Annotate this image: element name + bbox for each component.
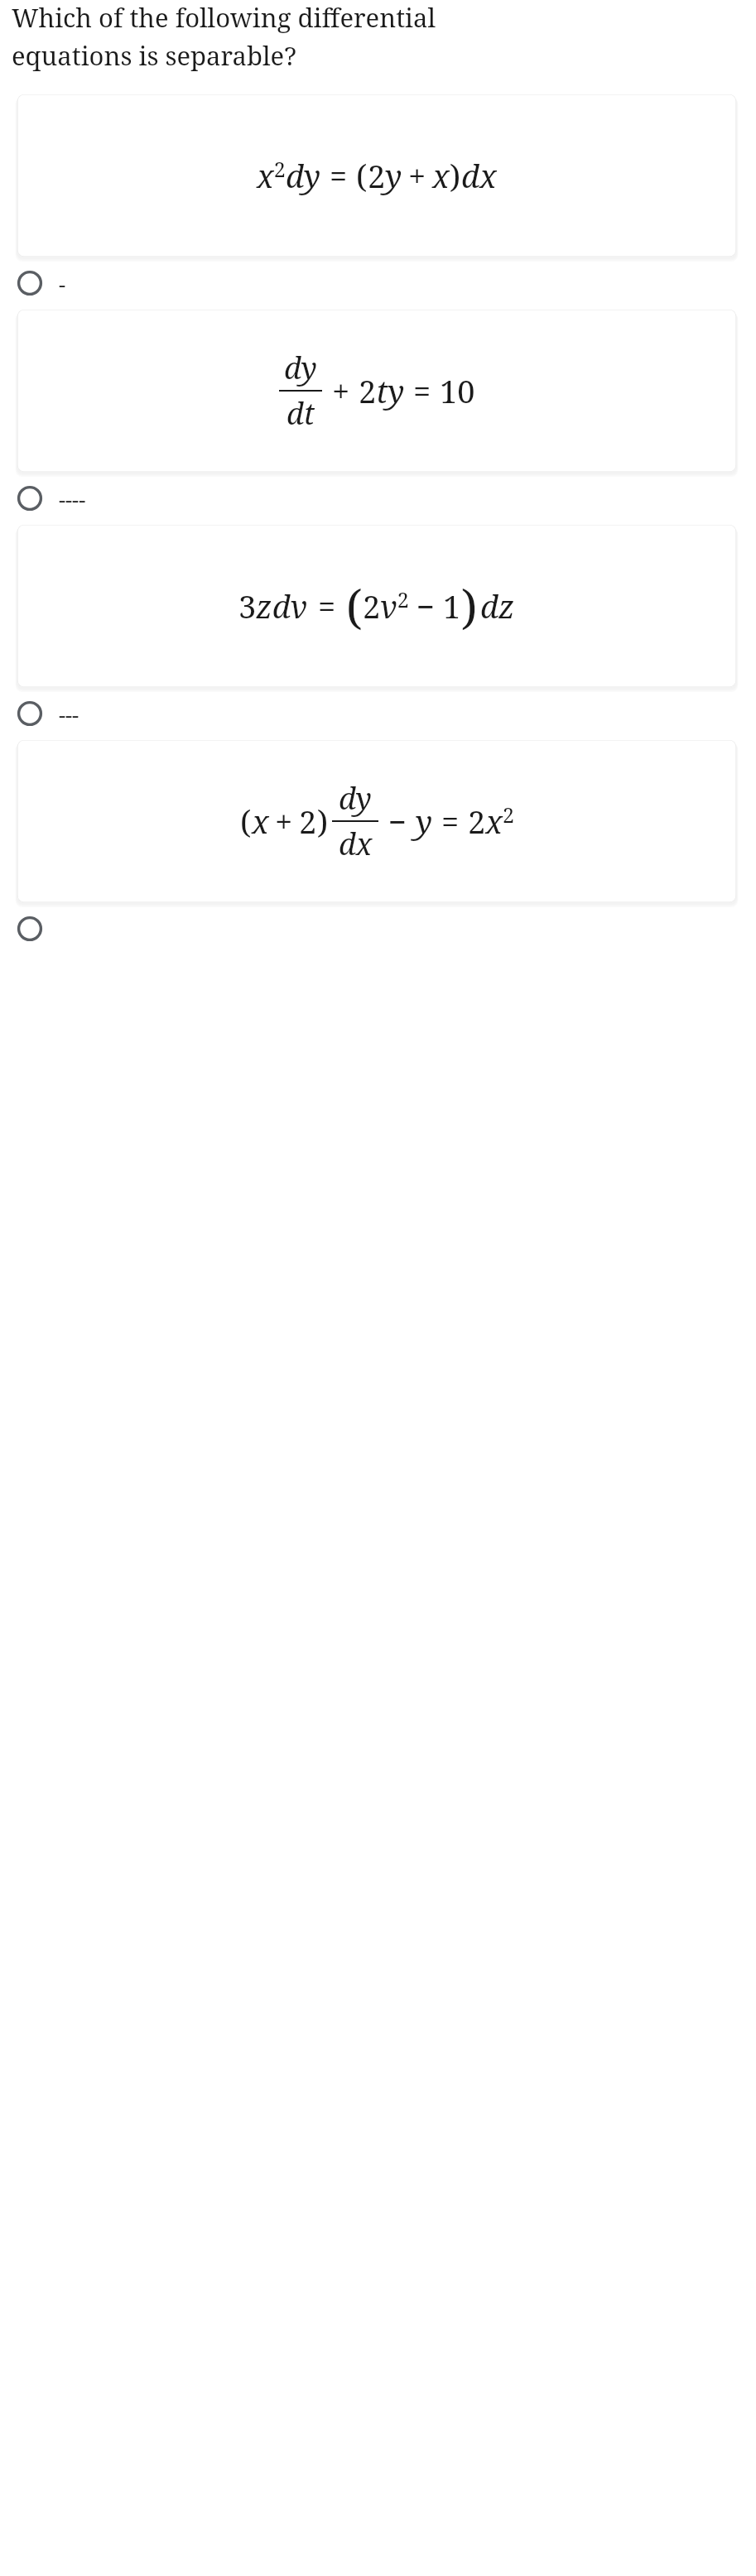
staticText: ---- — [59, 484, 86, 513]
staticText: - — [59, 269, 66, 298]
button[interactable]: 3zdv — [17, 525, 736, 687]
staticText: − — [417, 584, 436, 627]
staticText: − — [388, 800, 407, 843]
other: Select option — [17, 486, 42, 511]
staticText: x — [252, 800, 269, 843]
staticText: 2v2 — [363, 584, 409, 627]
other: Select option — [17, 701, 42, 726]
staticText: + — [332, 369, 350, 412]
staticText: dy — [286, 154, 321, 197]
staticText: dy — [284, 348, 317, 388]
staticText: ( — [346, 574, 363, 637]
staticText: dt — [287, 393, 315, 434]
button[interactable]: dy — [17, 310, 736, 472]
button[interactable]: x2 — [17, 94, 736, 257]
staticText: 2x2 — [468, 800, 514, 843]
staticText: ) — [450, 154, 461, 197]
staticText: 2 — [299, 800, 317, 843]
staticText: ) — [317, 800, 329, 843]
staticText: dz — [480, 584, 515, 627]
staticText: 10 — [440, 369, 475, 412]
staticText: = — [441, 800, 460, 843]
button[interactable]: ( — [17, 740, 736, 902]
staticText: ( — [356, 154, 368, 197]
staticText: 3zdv — [238, 584, 308, 627]
staticText: ) — [461, 574, 478, 637]
other: Select option — [17, 271, 42, 296]
button[interactable]: Select option — [0, 472, 756, 525]
staticText: ( — [240, 800, 252, 843]
staticText: --- — [59, 699, 79, 728]
button[interactable]: Select option — [0, 687, 756, 740]
staticText: Which of the following differential equa… — [12, 0, 436, 73]
staticText: dx — [339, 824, 373, 864]
staticText: = — [413, 369, 431, 412]
button[interactable]: Select option — [0, 257, 756, 310]
button[interactable]: Select option — [0, 902, 756, 955]
staticText: + — [408, 154, 426, 197]
staticText: x — [432, 154, 450, 197]
staticText: x2 — [257, 154, 286, 197]
staticText: = — [330, 154, 348, 197]
staticText: y — [416, 800, 433, 843]
staticText: + — [275, 800, 293, 843]
staticText: 2ty — [359, 369, 405, 412]
staticText: dx — [461, 154, 497, 197]
staticText: 2y — [368, 154, 402, 197]
other: Select option — [17, 916, 42, 941]
staticText: 1 — [443, 584, 461, 627]
staticText: = — [318, 584, 336, 627]
staticText: dy — [339, 778, 372, 819]
